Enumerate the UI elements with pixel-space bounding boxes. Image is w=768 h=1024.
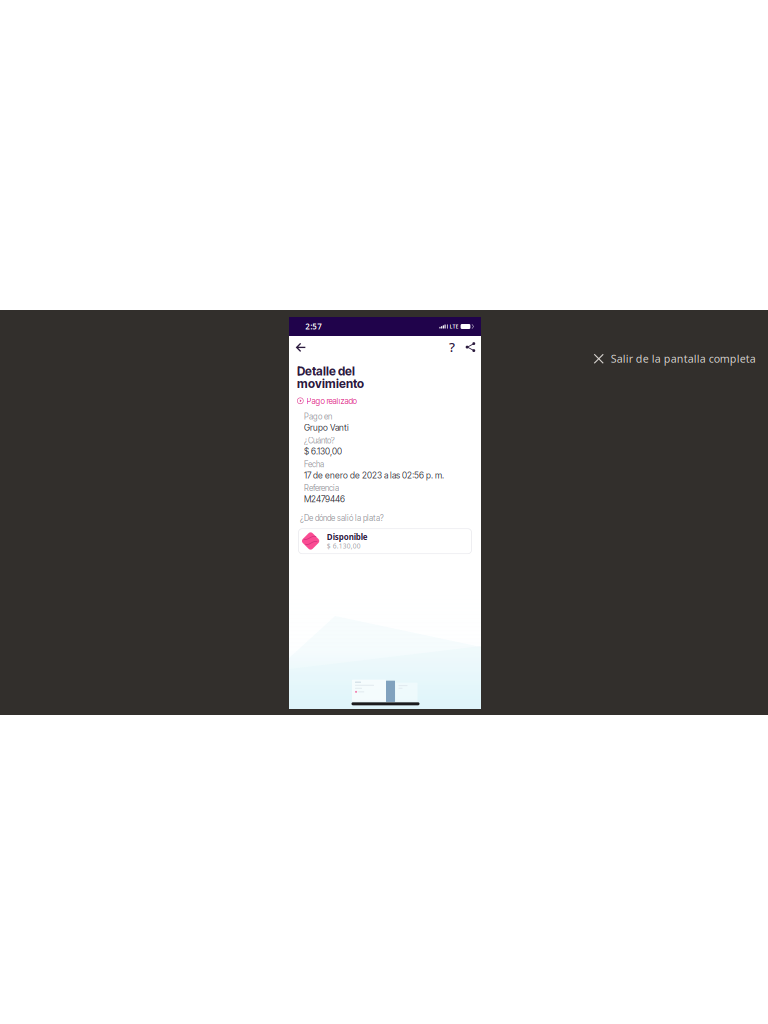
staticText: ? (449, 338, 455, 356)
staticText: Disponible (327, 532, 368, 542)
staticText: Salir de la pantalla completa (611, 351, 756, 366)
staticText: Detalle del (297, 364, 355, 378)
button[interactable]: Compartir (461, 337, 479, 357)
staticText: Fecha (304, 459, 324, 469)
button[interactable]: Disponible (298, 529, 471, 554)
staticText: Pago en (304, 412, 332, 422)
button[interactable]: Atrás (290, 337, 312, 357)
staticText: $ 6.130,00 (327, 541, 361, 550)
staticText: 17 de enero de 2023 a las 02:56 p. m. (304, 470, 444, 481)
button[interactable]: Ayuda (444, 337, 460, 357)
staticText: Pago realizado (307, 396, 357, 406)
staticText: $ 6.130,00 (304, 446, 342, 457)
staticText: LTE (450, 323, 459, 330)
staticText: Referencia (304, 483, 339, 493)
staticText: Grupo Vanti (304, 422, 349, 433)
button[interactable]: Salir de la pantalla completa (588, 347, 761, 370)
staticText: movimiento (297, 376, 364, 391)
staticText: ¿Cuánto? (304, 436, 335, 445)
staticText: ¿De dónde salió la plata? (300, 513, 384, 523)
staticText: 2:57 (305, 321, 322, 332)
staticText: M2479446 (304, 494, 345, 504)
